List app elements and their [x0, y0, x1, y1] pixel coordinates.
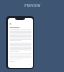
staticText: PREVIEW [24, 4, 41, 8]
button[interactable] [6, 16, 34, 69]
